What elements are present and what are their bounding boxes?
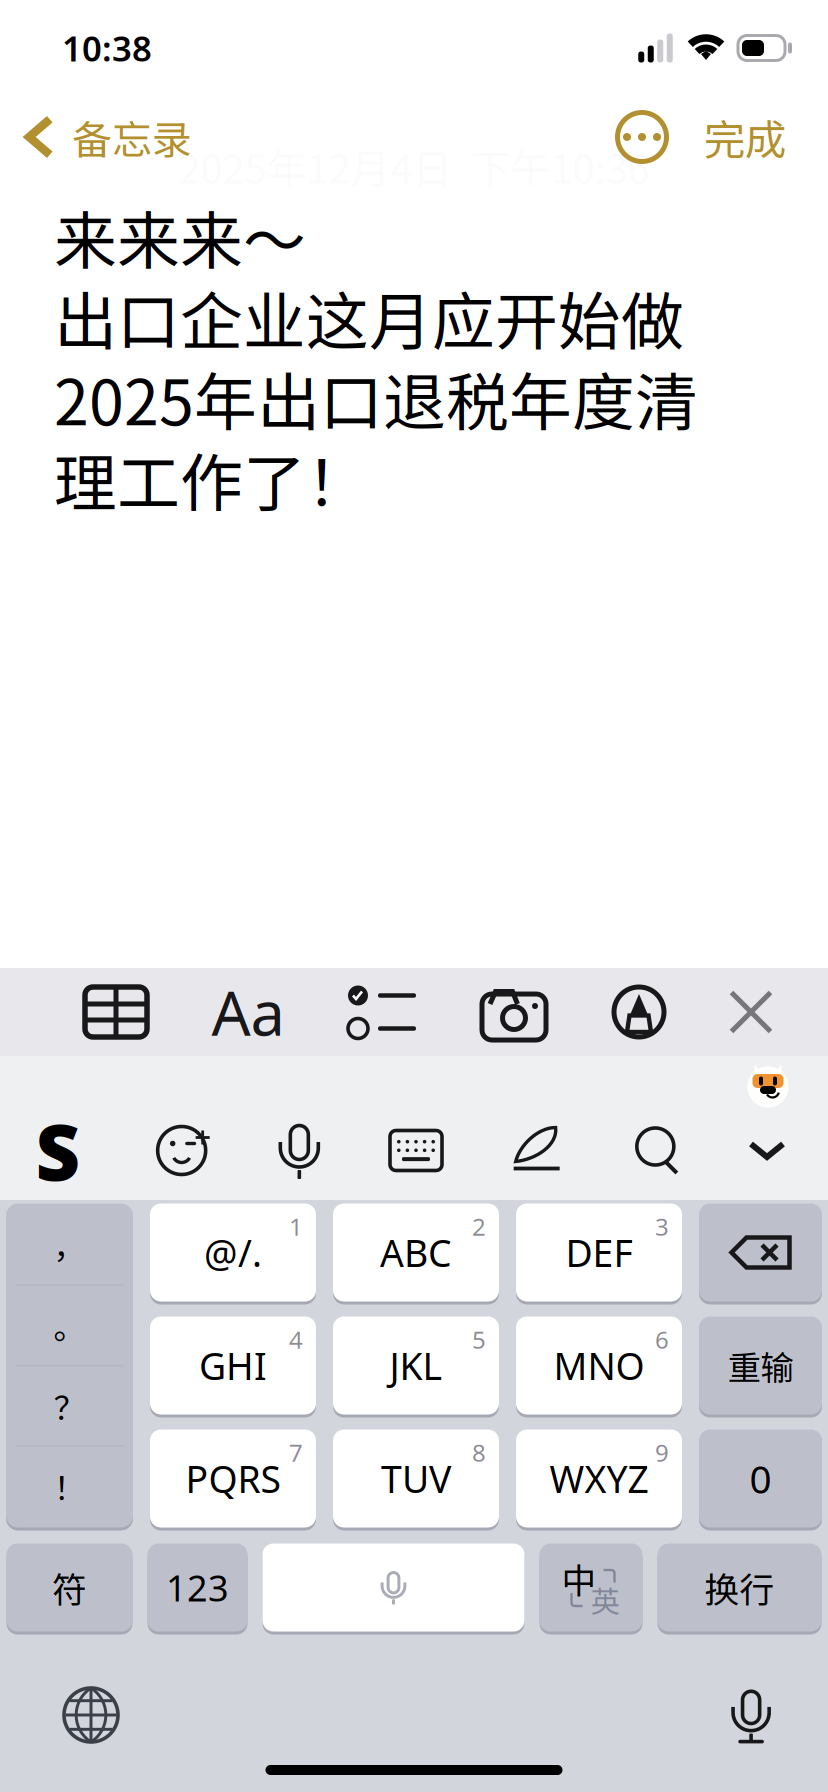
button[interactable]: MNO [516,1315,682,1416]
button[interactable]: 搜索 [629,1124,681,1176]
staticText: 0 [749,1453,771,1504]
button[interactable]: 123 [147,1542,247,1633]
staticText: 2025年12月4日 下午10:36 [178,137,649,195]
staticText: @/. [204,1228,262,1277]
button[interactable]: 键盘设置 [388,1127,444,1173]
button[interactable]: 文字格式 [211,984,285,1040]
button[interactable]: 0 [699,1428,822,1529]
button[interactable]: 重输 [699,1315,822,1416]
staticText: 2025年出口退税年度清 [54,352,698,443]
button[interactable]: ， [6,1202,133,1529]
button[interactable]: 符 [6,1542,132,1633]
button[interactable]: 完成 [692,97,798,177]
button[interactable]: TUV [333,1428,499,1529]
staticText: 3 [655,1211,669,1242]
button[interactable]: 搜狗输入法 [30,1121,86,1179]
button[interactable]: DEF [516,1202,682,1303]
button[interactable]: GHI [150,1315,316,1416]
button[interactable]: 手写输入 [511,1124,563,1176]
staticText: ！ [53,1463,85,1509]
staticText: S [35,1099,80,1202]
button[interactable]: 切换键盘 [62,1686,120,1744]
button[interactable]: 中英切换 [539,1542,642,1633]
button[interactable]: 标记 [611,984,667,1040]
staticText: Aa [211,971,284,1053]
button[interactable]: WXYZ [516,1428,682,1529]
button[interactable]: 删除 [699,1202,822,1303]
staticText: ？ [53,1382,85,1429]
button[interactable]: 更多 [614,109,670,165]
button[interactable]: 清单 [347,984,417,1040]
staticText: ABC [380,1228,452,1277]
staticText: JKL [389,1341,442,1390]
staticText: 4 [289,1324,303,1355]
staticText: 9 [655,1437,669,1468]
staticText: 备忘录 [72,108,192,166]
staticText: 理工作了！ [54,433,369,524]
button[interactable]: 收起键盘 [748,1141,786,1160]
button[interactable]: 语音输入 [277,1120,321,1180]
staticText: 7 [289,1437,303,1468]
staticText: 2 [472,1211,486,1242]
staticText: 10:38 [62,25,152,71]
button[interactable]: ABC [333,1202,499,1303]
staticText: GHI [199,1341,267,1390]
staticText: 重输 [727,1341,793,1390]
staticText: 符 [52,1562,87,1613]
staticText: 8 [472,1437,486,1468]
staticText: DEF [565,1228,632,1277]
staticText: 1 [289,1211,303,1242]
button[interactable]: 备忘录 [0,98,208,176]
button[interactable]: JKL [333,1315,499,1416]
staticText: ， [53,1222,85,1268]
staticText: TUV [381,1454,451,1503]
button[interactable]: 关闭 [729,990,773,1034]
button[interactable]: @/. [150,1202,316,1303]
button[interactable]: 听写 [730,1686,772,1743]
staticText: WXYZ [549,1454,648,1503]
staticText: MNO [553,1341,644,1390]
staticText: 来来来～ [54,191,306,282]
button[interactable]: 表格 [83,985,149,1039]
staticText: PQRS [185,1454,280,1503]
button[interactable]: 表情 [153,1122,211,1178]
staticText: 5 [472,1324,486,1355]
staticText: 。 [53,1302,85,1348]
button[interactable]: 空格 [262,1542,524,1633]
staticText: 完成 [704,107,786,167]
button[interactable]: 换行 [657,1542,821,1633]
staticText: 出口企业这月应开始做 [54,272,684,362]
staticText: 中 [561,1553,596,1604]
button[interactable]: 相机 [479,984,549,1040]
staticText: 6 [655,1324,669,1355]
staticText: 123 [166,1564,229,1611]
button[interactable]: PQRS [150,1428,316,1529]
staticText: 英 [590,1578,619,1621]
staticText: 换行 [704,1562,774,1613]
